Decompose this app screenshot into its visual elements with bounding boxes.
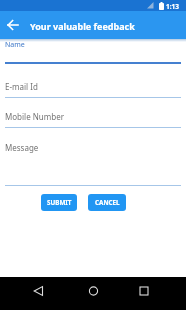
staticText: 1:13	[166, 2, 179, 11]
button[interactable]: SUBMIT	[41, 194, 77, 211]
button[interactable]: CANCEL	[88, 194, 126, 211]
button[interactable]	[6, 18, 20, 32]
button[interactable]	[28, 281, 48, 301]
staticText: SUBMIT	[47, 198, 72, 207]
staticText: E-mail Id	[5, 81, 38, 92]
staticText: Mobile Number	[5, 111, 64, 122]
staticText: Name	[5, 40, 25, 50]
button[interactable]	[83, 281, 103, 301]
button[interactable]	[134, 281, 154, 301]
staticText: Message	[5, 142, 39, 153]
staticText: CANCEL	[95, 198, 120, 207]
staticText: Your valuable feedback	[30, 20, 135, 32]
